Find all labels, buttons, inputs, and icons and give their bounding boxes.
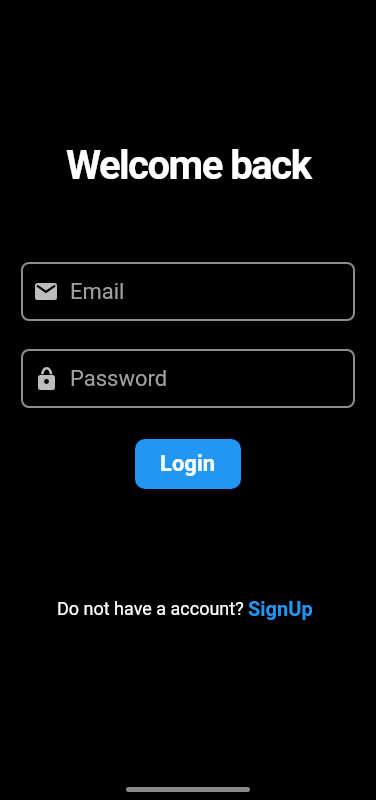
button[interactable]: Login <box>135 439 241 489</box>
staticText: Password <box>70 366 168 392</box>
staticText: Do not have a account? <box>57 598 244 619</box>
button[interactable]: Password <box>21 349 355 408</box>
staticText: SignUp <box>248 597 313 620</box>
button[interactable]: Email <box>21 262 355 321</box>
staticText: Login <box>160 451 216 477</box>
staticText: Email <box>70 279 125 305</box>
staticText: Welcome back <box>66 142 311 189</box>
button[interactable]: Do not have a account? <box>57 597 313 620</box>
